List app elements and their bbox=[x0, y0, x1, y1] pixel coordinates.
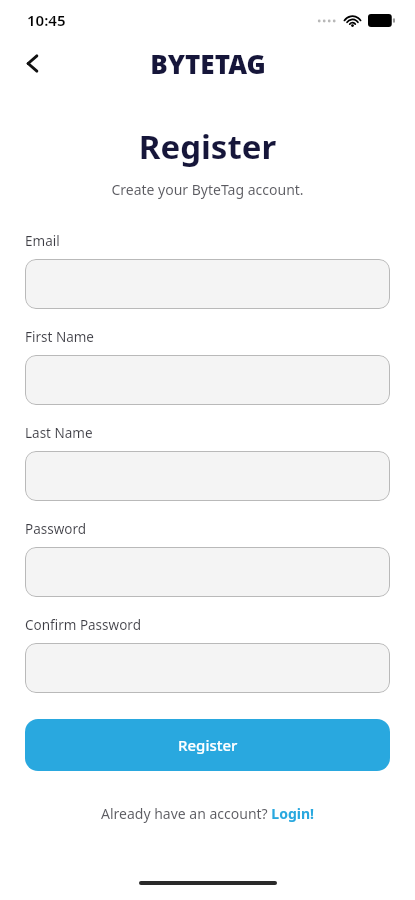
staticText: Register bbox=[178, 735, 238, 755]
button[interactable]: Already have an account? Login! bbox=[0, 804, 415, 823]
staticText: BYTETAG bbox=[150, 46, 266, 81]
staticText: Email bbox=[25, 232, 60, 250]
staticText: Already have an account? Login! bbox=[101, 804, 314, 823]
staticText: Confirm Password bbox=[25, 616, 141, 634]
button[interactable] bbox=[25, 643, 390, 693]
button[interactable] bbox=[25, 547, 390, 597]
button[interactable] bbox=[25, 259, 390, 309]
button[interactable]: Register bbox=[25, 719, 390, 771]
staticText: Register bbox=[0, 124, 415, 169]
button[interactable]: Back bbox=[10, 41, 54, 85]
button[interactable] bbox=[25, 451, 390, 501]
staticText: Last Name bbox=[25, 424, 93, 442]
staticText: First Name bbox=[25, 328, 94, 346]
staticText: Create your ByteTag account. bbox=[0, 180, 415, 199]
staticText: Password bbox=[25, 520, 87, 538]
staticText: 10:45 bbox=[27, 10, 66, 30]
button[interactable] bbox=[25, 355, 390, 405]
